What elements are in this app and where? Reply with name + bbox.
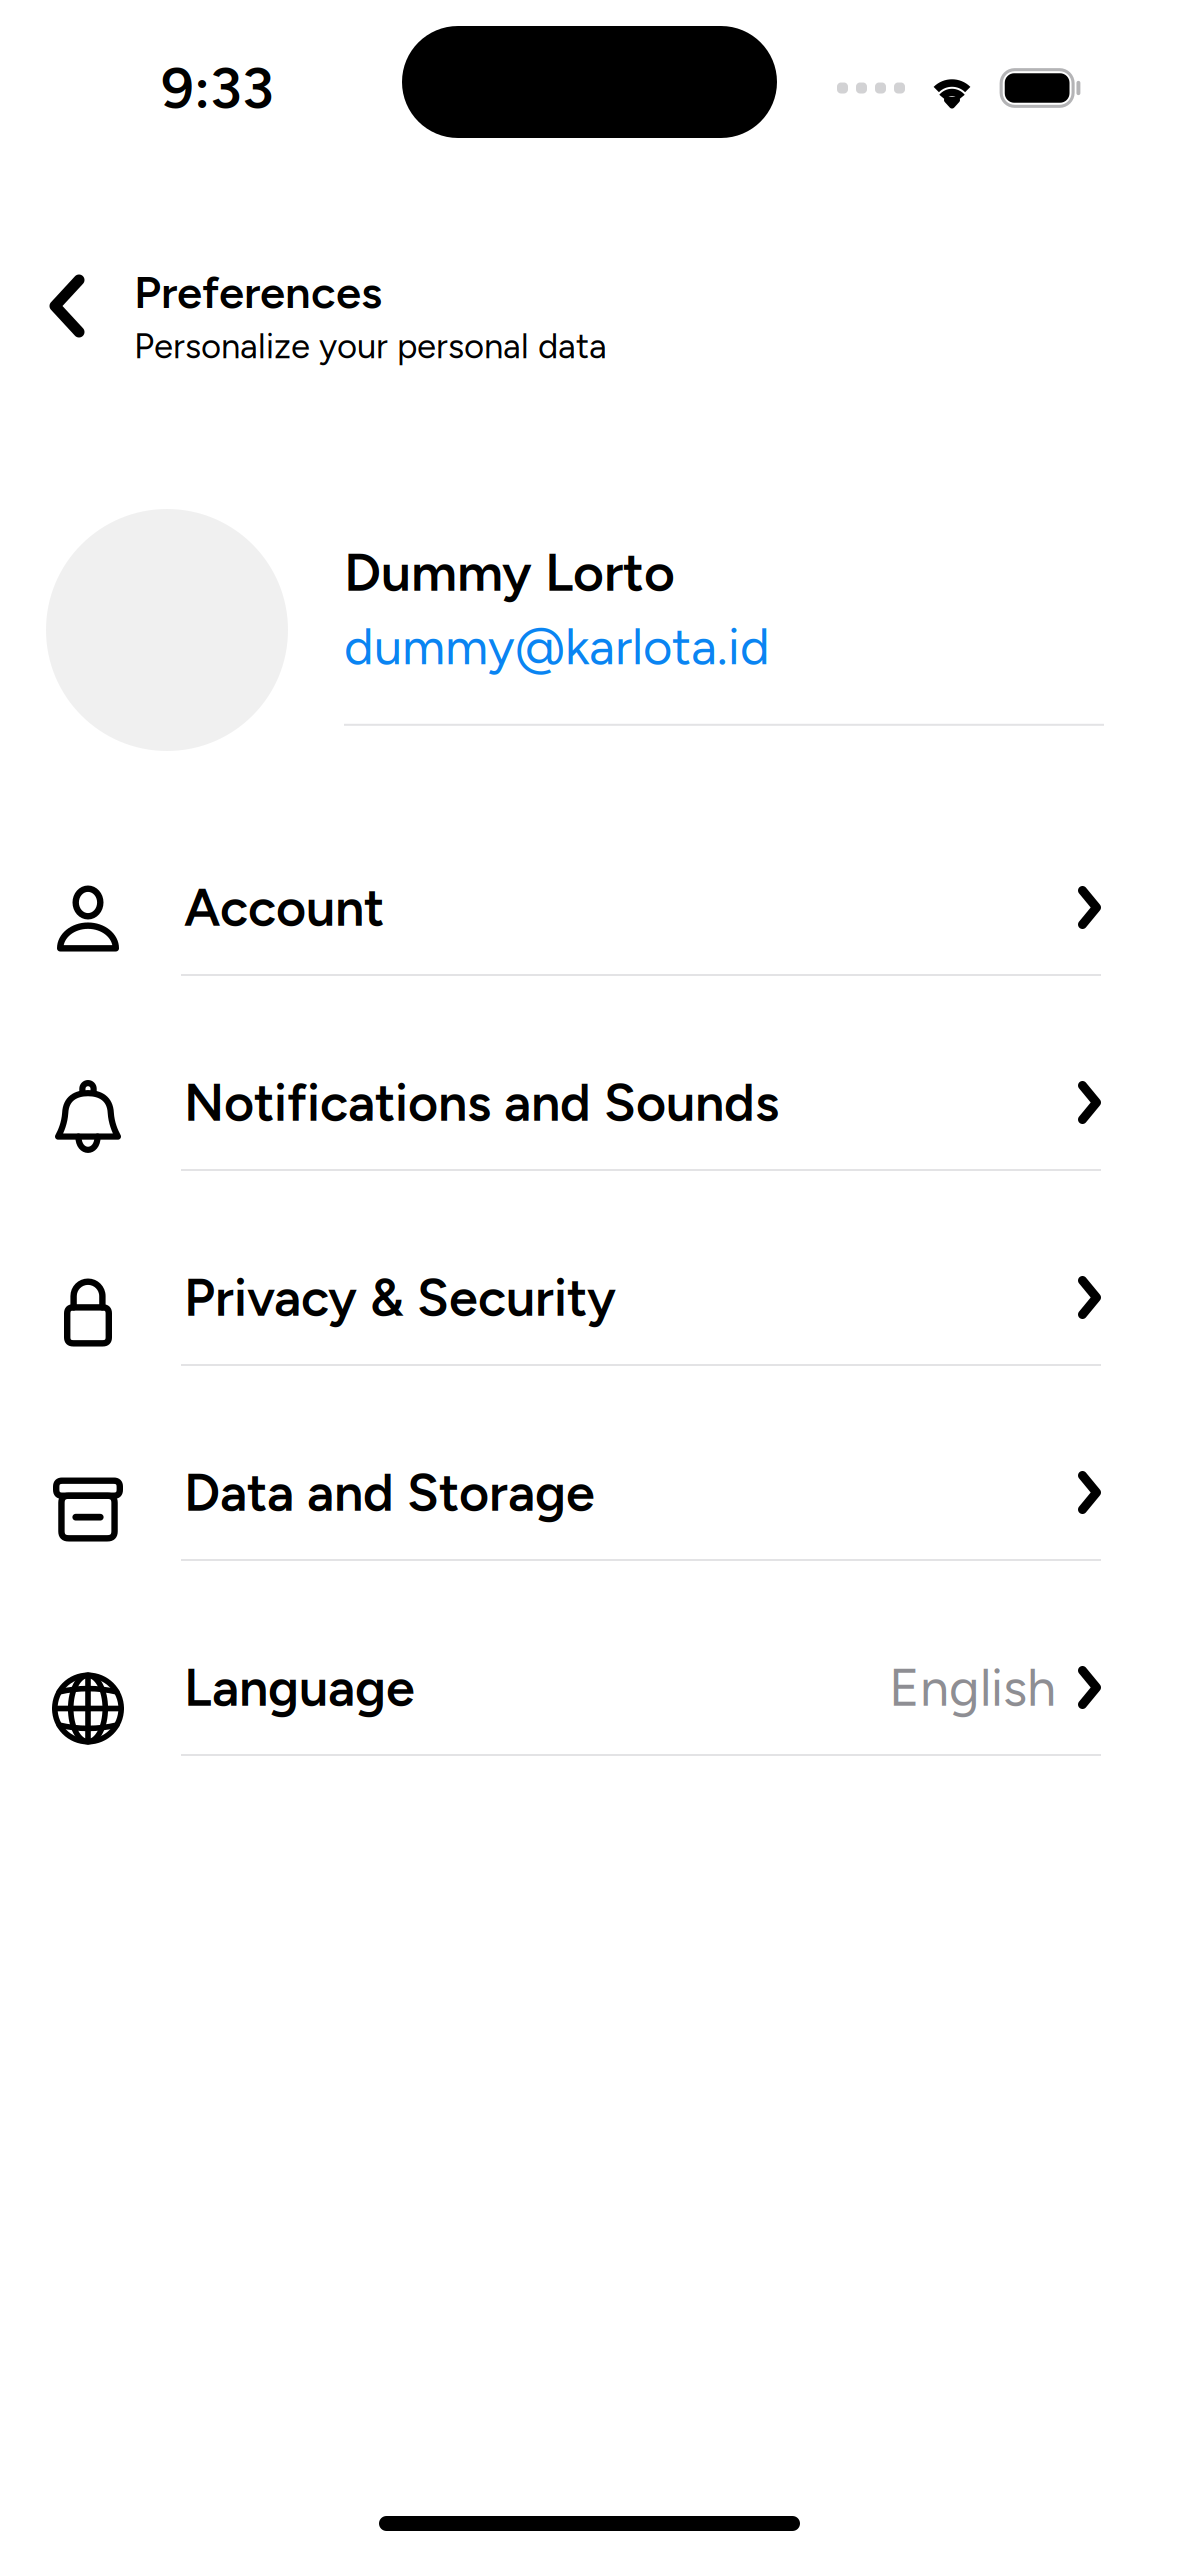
staticText: dummy@karlota.id [344, 616, 770, 677]
staticText: Preferences [134, 265, 382, 319]
button[interactable]: Language [0, 1557, 1179, 1752]
button[interactable]: Notifications and Sounds [0, 972, 1179, 1167]
button[interactable]: Data and Storage [0, 1362, 1179, 1557]
button[interactable]: Preferences [0, 265, 1179, 367]
staticText: 9:33 [161, 54, 274, 122]
staticText: Personalize your personal data [134, 325, 607, 367]
button[interactable]: Account [0, 777, 1179, 972]
staticText: Data and Storage [184, 1461, 595, 1524]
staticText: English [889, 1656, 1056, 1719]
staticText: Language [184, 1656, 415, 1719]
staticText: Notifications and Sounds [184, 1071, 779, 1134]
staticText: Account [184, 876, 384, 939]
button[interactable]: Privacy & Security [0, 1167, 1179, 1362]
staticText: Dummy Lorto [344, 540, 675, 604]
staticText: Privacy & Security [184, 1266, 616, 1329]
